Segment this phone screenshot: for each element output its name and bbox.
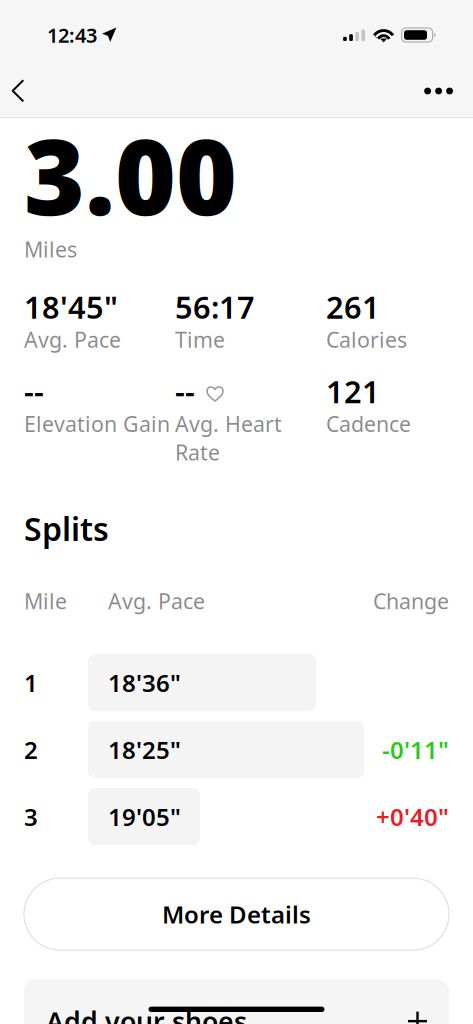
staticText: Time (175, 325, 225, 354)
staticText: 2 (24, 734, 38, 766)
staticText: 121 (326, 371, 380, 412)
staticText: 3 (24, 801, 38, 833)
button[interactable]: More Details (24, 878, 449, 950)
staticText: Cadence (326, 410, 411, 438)
staticText: -- (24, 371, 44, 412)
staticText: +0'40" (376, 801, 449, 833)
staticText: Calories (326, 325, 407, 354)
staticText: 261 (326, 287, 380, 327)
staticText: 19'05" (108, 801, 181, 833)
button[interactable]: Back (0, 69, 50, 113)
staticText: Avg. Pace (24, 325, 121, 354)
staticText: More Details (162, 898, 311, 930)
staticText: -- (175, 371, 195, 412)
staticText: 12:43 (47, 22, 97, 48)
staticText: 3.00 (24, 106, 237, 244)
button[interactable]: More options (401, 69, 473, 113)
button[interactable]: Add your shoes (24, 979, 449, 1024)
staticText: 18'36" (108, 667, 181, 699)
staticText: Change (373, 587, 449, 615)
staticText: Add your shoes (46, 1003, 247, 1024)
staticText: Miles (24, 235, 77, 263)
staticText: 56:17 (175, 287, 255, 327)
staticText: Elevation Gain (24, 410, 170, 438)
staticText: 18'45" (24, 287, 118, 327)
staticText: Splits (24, 507, 109, 550)
staticText: -0'11" (382, 734, 449, 766)
staticText: Avg. Pace (108, 587, 205, 615)
staticText: Avg. Heart Rate (175, 410, 282, 466)
staticText: 18'25" (108, 734, 181, 766)
staticText: Mile (24, 587, 67, 615)
staticText: 1 (24, 667, 38, 699)
